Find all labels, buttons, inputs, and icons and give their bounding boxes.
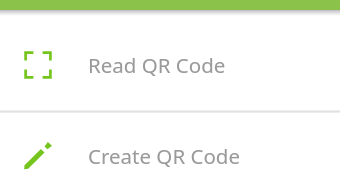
button[interactable]: Create QR code: [0, 128, 340, 184]
button[interactable]: Read QR code: [0, 37, 340, 93]
other: Read QR code: [24, 51, 52, 79]
staticText: Create QR Code: [88, 142, 240, 170]
staticText: Read QR Code: [88, 51, 226, 79]
other: Create QR code: [24, 142, 52, 170]
